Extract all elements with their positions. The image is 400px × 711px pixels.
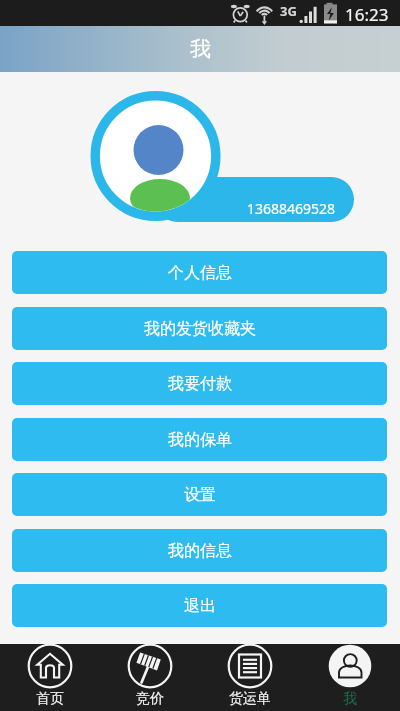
other: Profile avatar xyxy=(90,90,221,222)
staticText: 我的信息 xyxy=(168,541,232,561)
button[interactable]: 我的信息 xyxy=(12,529,387,572)
staticText: 我要付款 xyxy=(168,374,232,394)
button[interactable]: 我的保单 xyxy=(12,418,387,461)
staticText: 货运单 xyxy=(229,690,271,708)
button[interactable]: 13688469528 xyxy=(155,177,354,222)
button[interactable]: 我的发货收藏夹 xyxy=(12,307,387,350)
staticText: 我 xyxy=(190,36,211,62)
button[interactable]: 首页 xyxy=(0,644,100,711)
button[interactable]: 退出 xyxy=(12,584,387,627)
staticText: 13688469528 xyxy=(247,199,336,218)
button[interactable]: 竞价 xyxy=(100,644,200,711)
staticText: 我的保单 xyxy=(168,430,232,450)
staticText: 竞价 xyxy=(136,690,164,708)
staticText: 退出 xyxy=(184,596,216,616)
staticText: 我的发货收藏夹 xyxy=(144,319,256,339)
button[interactable]: 设置 xyxy=(12,473,387,516)
staticText: 设置 xyxy=(184,485,216,505)
button[interactable]: 个人信息 xyxy=(12,251,387,294)
staticText: 首页 xyxy=(36,690,64,708)
staticText: 16:23 xyxy=(345,3,389,26)
staticText: 我 xyxy=(343,690,357,708)
button[interactable]: 我要付款 xyxy=(12,362,387,405)
staticText: 3G xyxy=(280,2,297,20)
button[interactable]: 我 xyxy=(300,644,400,711)
staticText: 个人信息 xyxy=(168,263,232,283)
button[interactable]: 货运单 xyxy=(200,644,300,711)
